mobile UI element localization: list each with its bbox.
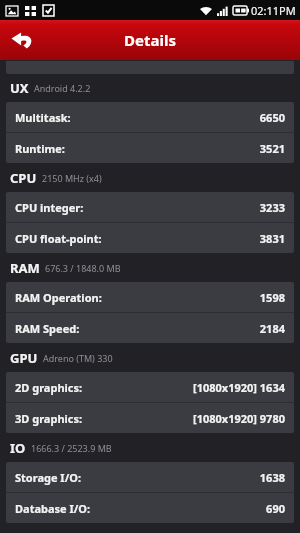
staticText: [1080x1920] 1634 [192, 380, 285, 395]
staticText: RAM Operation: [15, 290, 102, 305]
button[interactable]: Back [0, 20, 44, 60]
staticText: 2D graphics: [15, 380, 83, 395]
button[interactable]: 2D graphics: [6, 372, 294, 402]
staticText: 3521 [259, 141, 285, 156]
staticText: 3831 [259, 231, 285, 246]
staticText: Details [0, 30, 300, 50]
button[interactable]: Storage I/O: [6, 462, 294, 492]
button[interactable]: Runtime: [6, 133, 294, 163]
staticText: [1080x1920] 9780 [192, 411, 285, 426]
button[interactable]: CPU float-point: [6, 223, 294, 253]
staticText: 6650 [259, 110, 285, 125]
staticText: 690 [266, 501, 285, 516]
button[interactable]: 3D graphics: [6, 403, 294, 433]
staticText: UX [10, 79, 29, 97]
staticText: IO [10, 439, 26, 457]
staticText: 1638 [259, 470, 285, 485]
staticText: RAM Speed: [15, 321, 80, 336]
staticText: 3D graphics: [15, 411, 83, 426]
staticText: 2184 [259, 321, 285, 336]
staticText: Adreno (TM) 330 [43, 352, 113, 364]
staticText: CPU float-point: [15, 231, 102, 246]
button[interactable]: Multitask: [6, 102, 294, 132]
button[interactable]: RAM Operation: [6, 282, 294, 312]
staticText: RAM [10, 259, 40, 277]
staticText: Multitask: [15, 110, 71, 125]
button[interactable]: CPU integer: [6, 192, 294, 222]
staticText: 676.3 / 1848.0 MB [45, 262, 121, 274]
staticText: CPU integer: [15, 200, 84, 215]
staticText: Storage I/O: [15, 470, 82, 485]
staticText: 1598 [259, 290, 285, 305]
staticText: Runtime: [15, 141, 65, 156]
staticText: 2150 MHz (x4) [42, 172, 102, 184]
button[interactable]: RAM Speed: [6, 313, 294, 343]
staticText: 3233 [259, 200, 285, 215]
button[interactable]: Database I/O: [6, 493, 294, 523]
staticText: Database I/O: [15, 501, 91, 516]
staticText: GPU [10, 349, 38, 367]
staticText: 1666.3 / 2523.9 MB [31, 442, 112, 454]
staticText: CPU [10, 169, 37, 187]
staticText: Android 4.2.2 [34, 82, 91, 94]
staticText: 02:11PM [251, 3, 296, 18]
